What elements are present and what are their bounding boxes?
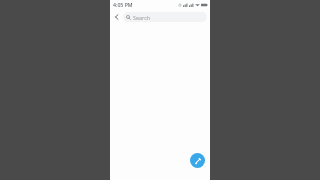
button[interactable]: Compose xyxy=(190,153,205,168)
button[interactable]: Back xyxy=(111,11,123,23)
staticText: 4:05 PM xyxy=(113,1,133,8)
button[interactable]: Search xyxy=(123,12,207,22)
staticText: Search xyxy=(133,14,151,21)
